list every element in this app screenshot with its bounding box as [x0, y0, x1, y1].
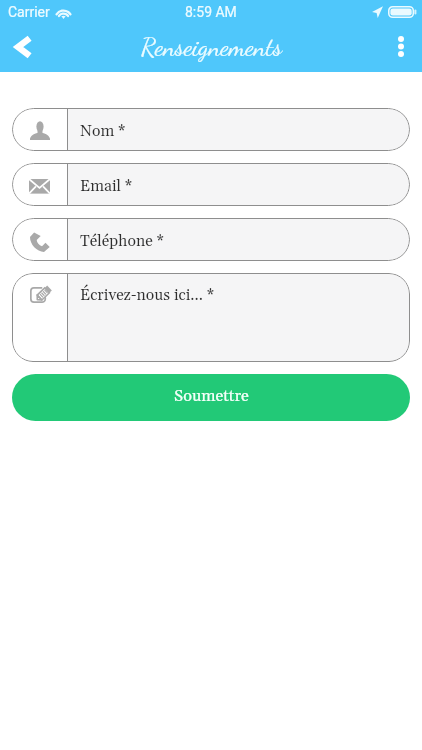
button[interactable]: Back — [0, 24, 44, 72]
button[interactable]: Écrivez-nous ici... * — [12, 273, 410, 362]
button[interactable]: Nom * — [12, 108, 410, 151]
button[interactable]: Soumettre — [12, 374, 410, 421]
staticText: Carrier — [8, 4, 50, 20]
staticText: Soumettre — [174, 386, 249, 407]
staticText: Téléphone * — [80, 231, 164, 251]
staticText: Nom * — [80, 121, 126, 141]
staticText: Renseignements — [141, 32, 282, 63]
button[interactable]: Téléphone * — [12, 218, 410, 261]
staticText: 8:59 AM — [185, 4, 237, 20]
staticText: Email * — [80, 176, 133, 196]
staticText: Écrivez-nous ici... * — [80, 285, 215, 305]
button[interactable]: Email * — [12, 163, 410, 206]
button[interactable]: More options — [378, 24, 422, 72]
